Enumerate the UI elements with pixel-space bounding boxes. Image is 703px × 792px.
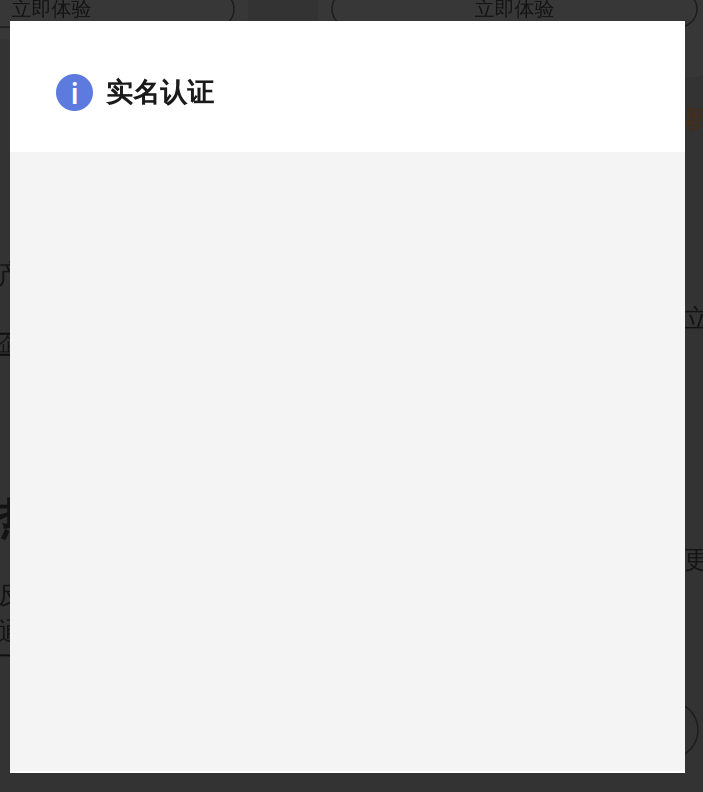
staticText: 立即查看 (684, 303, 703, 334)
button[interactable]: 企业实名认证 (0, 333, 608, 356)
button[interactable]: Assistant (642, 702, 698, 758)
staticText: 反馈与帮助 (0, 579, 123, 610)
staticText: 产品与服务 (0, 258, 133, 291)
staticText: 新品上线 (684, 104, 703, 135)
button[interactable]: 新品 (318, 0, 703, 77)
staticText: i (70, 73, 78, 112)
staticText: 立即体验 (474, 0, 554, 21)
staticText: 更多能力 (684, 544, 703, 575)
button[interactable]: 立即体验 (332, 0, 697, 27)
staticText: 实名认证 (106, 76, 214, 109)
button[interactable]: 新品 (0, 0, 248, 39)
staticText: 通用设置 (0, 616, 98, 647)
button[interactable]: 立即体验 (0, 0, 234, 27)
staticText: 热门能力 (0, 493, 170, 545)
staticText: 企业实名认证 (0, 332, 118, 357)
staticText: 立即体验 (11, 0, 91, 21)
